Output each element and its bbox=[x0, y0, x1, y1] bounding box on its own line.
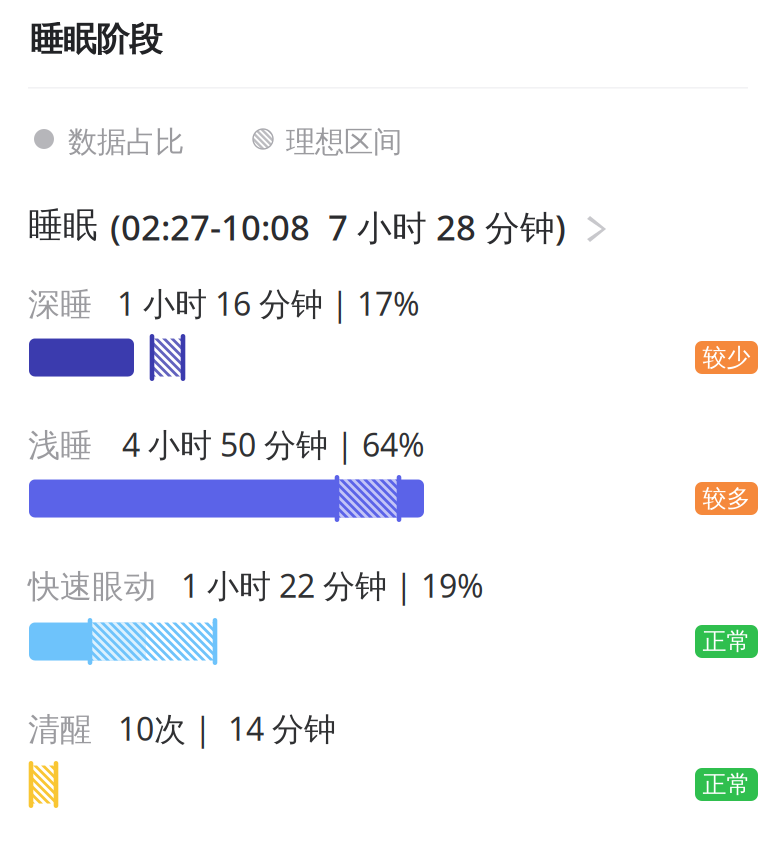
staticText: 正常 bbox=[702, 770, 750, 799]
staticText: 4 小时 50 分钟 | 64% bbox=[122, 423, 425, 465]
button[interactable]: 睡眠 bbox=[0, 0, 456, 46]
staticText: 深睡 bbox=[28, 285, 92, 324]
staticText: 较多 bbox=[702, 484, 750, 513]
staticText: 快速眼动 bbox=[28, 567, 156, 606]
button[interactable]: 较多 bbox=[695, 482, 758, 515]
staticText: 1 小时 22 分钟 | 19% bbox=[181, 564, 484, 606]
staticText: 清醒 bbox=[28, 710, 92, 749]
staticText: 1 小时 16 分钟 | 17% bbox=[117, 282, 420, 324]
staticText: 较少 bbox=[702, 343, 750, 372]
staticText: 睡眠 bbox=[28, 204, 98, 247]
staticText: 浅睡 bbox=[28, 426, 92, 465]
staticText: 睡眠阶段 bbox=[30, 19, 162, 60]
staticText: 理想区间 bbox=[286, 124, 402, 160]
button[interactable]: 正常 bbox=[695, 625, 758, 658]
staticText: (02:27-10:08 7 小时 28 分钟) bbox=[110, 204, 566, 250]
button[interactable]: 较少 bbox=[695, 341, 758, 374]
staticText: 正常 bbox=[702, 627, 750, 656]
staticText: 数据占比 bbox=[68, 124, 184, 160]
staticText: 10次 | 14 分钟 bbox=[118, 707, 336, 749]
button[interactable]: 正常 bbox=[695, 768, 758, 801]
